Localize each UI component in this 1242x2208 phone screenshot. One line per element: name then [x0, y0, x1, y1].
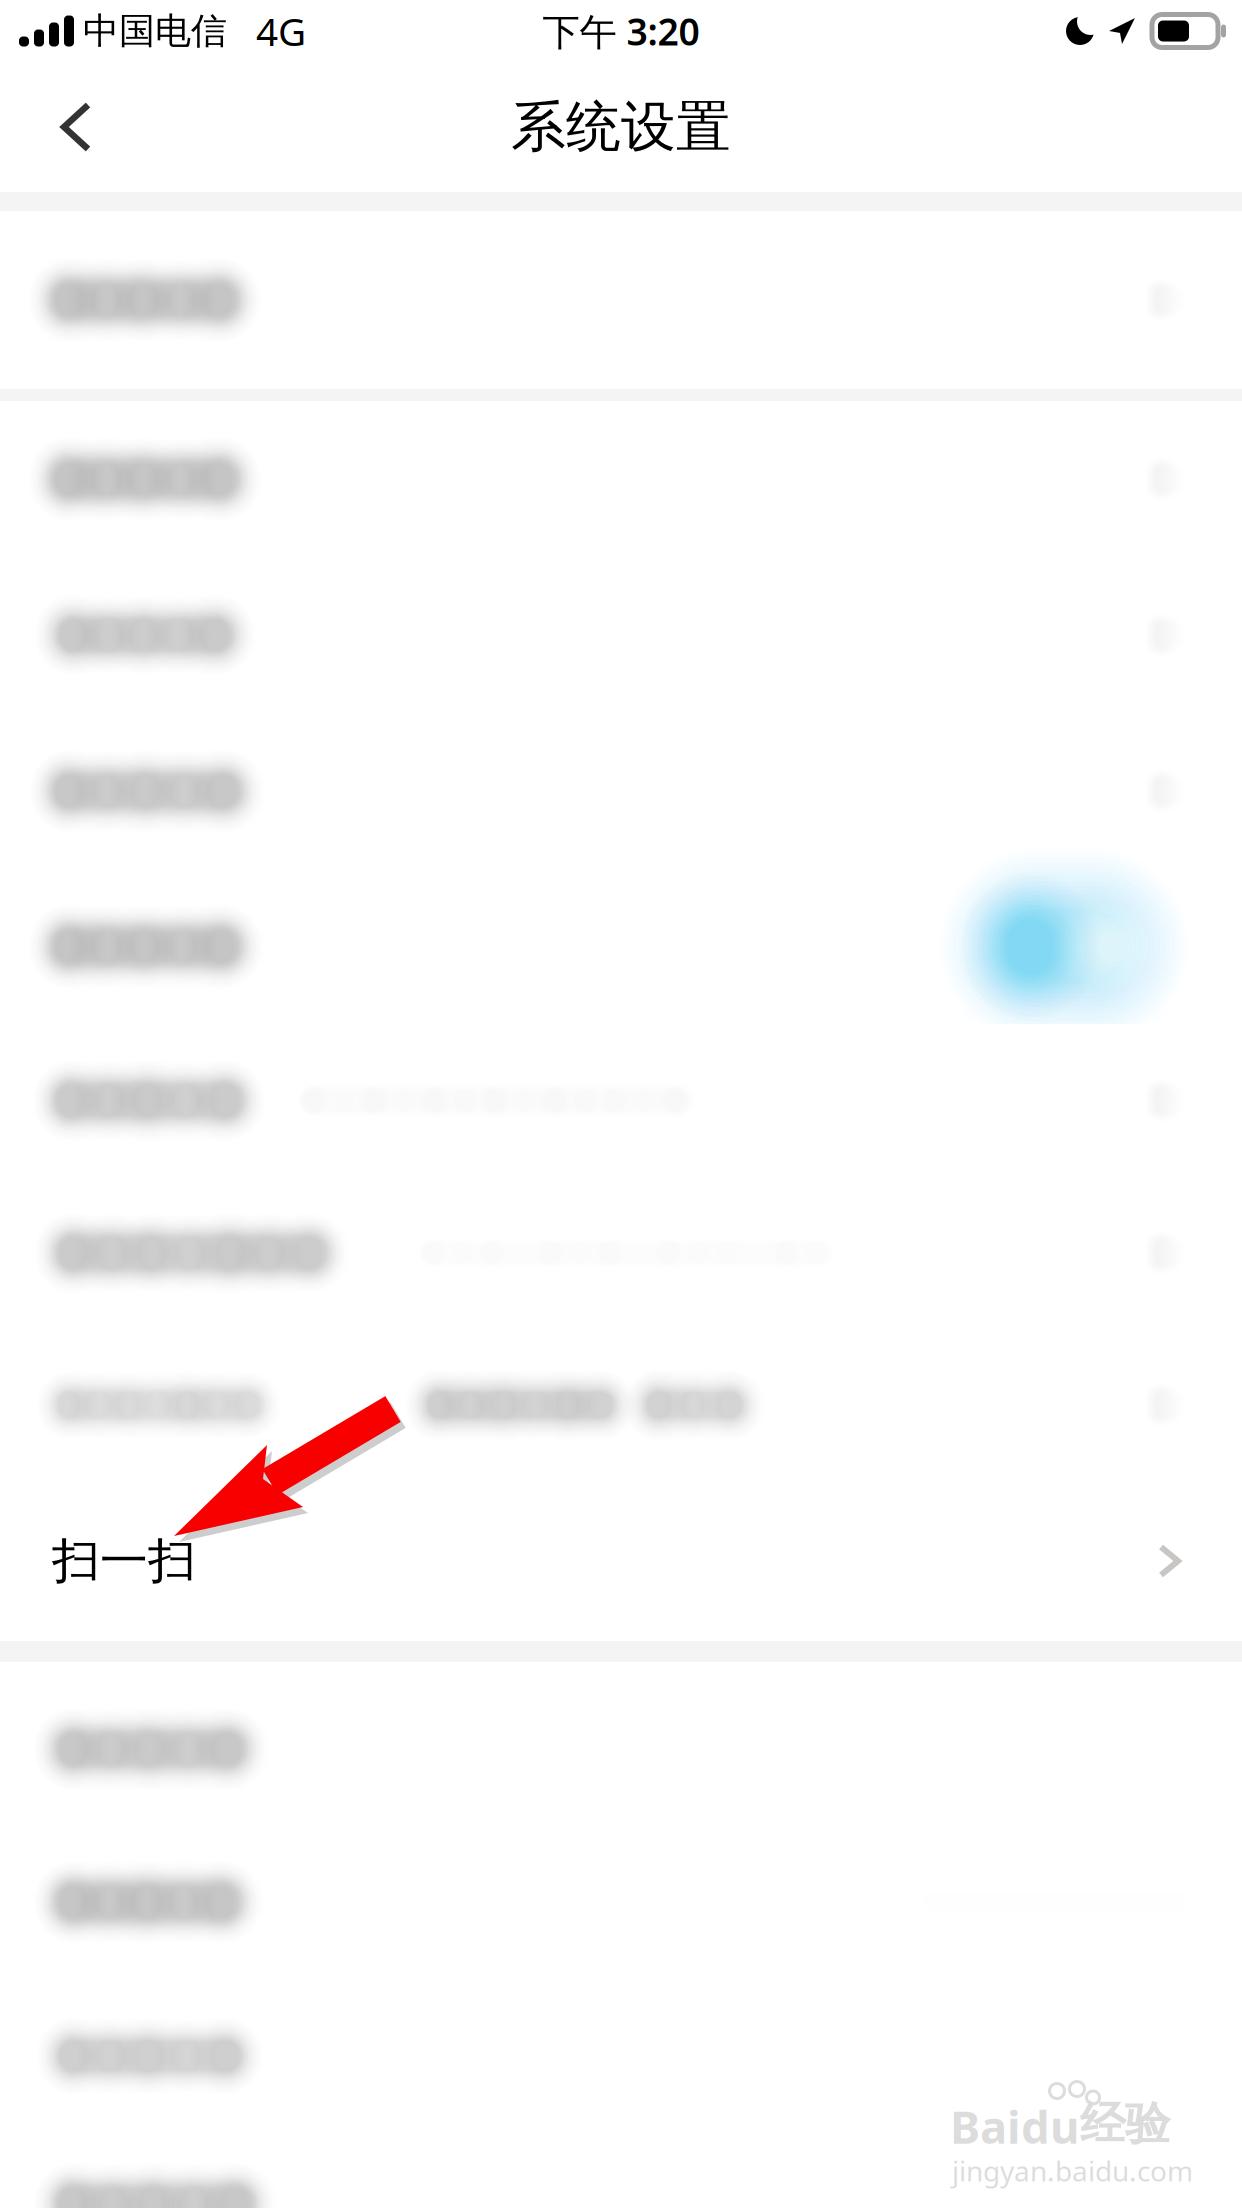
button[interactable]: 扫一扫: [0, 1481, 1242, 1641]
staticText: jingyan.baidu.com: [952, 2152, 1193, 2189]
staticText: 扫一扫: [52, 1531, 196, 1590]
staticText: 中国电信: [83, 9, 227, 53]
staticText: 下午 3:20: [542, 6, 699, 56]
staticText: Baidu: [950, 2096, 1079, 2156]
staticText: 经验: [1080, 2096, 1170, 2152]
button[interactable]: 返回: [23, 73, 129, 181]
staticText: 4G: [256, 5, 306, 57]
staticText: 系统设置: [511, 93, 731, 160]
